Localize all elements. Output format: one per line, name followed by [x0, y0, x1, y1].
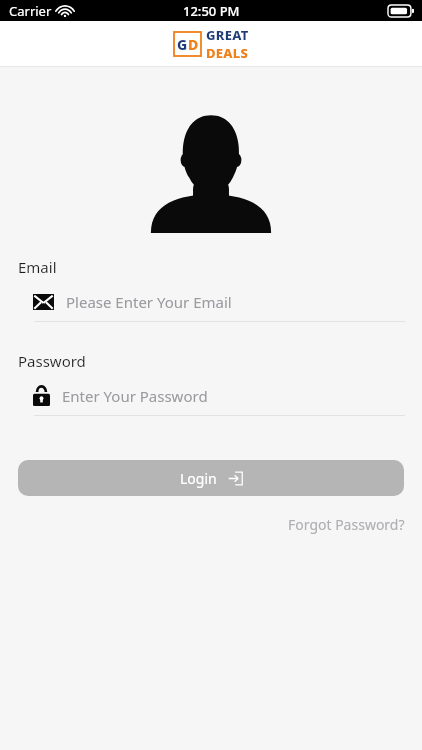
staticText: D	[188, 35, 199, 54]
staticText: Please Enter Your Email	[66, 292, 232, 312]
staticText: Password	[18, 351, 86, 371]
staticText: Carrier	[9, 2, 52, 20]
button[interactable]: Email	[0, 290, 422, 322]
staticText: Email	[18, 257, 57, 277]
staticText: Login	[180, 469, 217, 488]
other: Email	[33, 294, 54, 310]
staticText: DEALS	[206, 44, 249, 62]
button[interactable]: Password	[0, 384, 422, 416]
button[interactable]: Forgot Password?	[288, 513, 405, 536]
staticText: GREAT	[206, 26, 249, 44]
staticText: Enter Your Password	[62, 386, 208, 406]
button[interactable]: Login	[18, 460, 404, 496]
other: Login	[228, 471, 243, 486]
other: Password	[33, 385, 50, 406]
staticText: G	[177, 35, 188, 54]
staticText: 12:50 PM	[183, 2, 240, 20]
